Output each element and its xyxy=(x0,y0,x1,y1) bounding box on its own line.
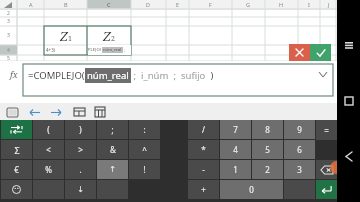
staticText: % xyxy=(45,164,52,175)
button[interactable]: - xyxy=(188,160,219,179)
staticText: núm_real xyxy=(87,69,129,82)
staticText: Z xyxy=(103,27,111,45)
button[interactable]: Name box xyxy=(71,104,87,120)
button[interactable]: =COMPLEJO( xyxy=(23,64,333,96)
staticText: ^ xyxy=(142,144,147,155)
staticText: € xyxy=(14,164,19,175)
staticText: 5 xyxy=(265,144,270,155)
staticText: núm_real xyxy=(103,47,122,53)
button[interactable]: Sheet options xyxy=(92,104,108,120)
button[interactable]: ( xyxy=(33,120,64,139)
button[interactable]: & xyxy=(97,140,128,159)
button[interactable]: : xyxy=(129,120,160,139)
staticText: . xyxy=(79,164,82,175)
button[interactable]: 1 xyxy=(220,160,251,179)
staticText: 4 xyxy=(233,144,238,155)
button[interactable]: ; xyxy=(97,120,128,139)
staticText: 0 xyxy=(249,184,254,195)
staticText: 3 xyxy=(297,164,302,175)
staticText: 8 xyxy=(265,124,270,135)
staticText: =COMPLEJO( xyxy=(28,69,85,82)
staticText: 2 xyxy=(265,164,270,175)
staticText: H xyxy=(279,1,284,8)
button[interactable]: ↓ xyxy=(65,180,96,199)
staticText: ( xyxy=(47,124,50,135)
button[interactable]: Emoji xyxy=(1,180,32,199)
button[interactable]: Σ xyxy=(1,140,32,159)
button[interactable]: Confirm xyxy=(310,44,331,61)
button[interactable]: 2 xyxy=(252,160,283,179)
staticText: I xyxy=(308,1,310,8)
button[interactable]: 4 xyxy=(220,140,251,159)
staticText: + xyxy=(201,184,206,195)
button[interactable]: 3 xyxy=(284,160,315,179)
staticText: F xyxy=(209,1,212,8)
staticText: > xyxy=(78,144,83,155)
staticText: 2 xyxy=(111,34,115,44)
button[interactable]: ↑ xyxy=(97,160,128,179)
button[interactable]: Cancel xyxy=(289,44,310,61)
staticText: Z xyxy=(60,27,68,45)
staticText: 7 xyxy=(233,124,238,135)
button[interactable]: % xyxy=(33,160,64,179)
button[interactable]: Hide keyboard xyxy=(4,104,20,120)
button[interactable]: * xyxy=(188,140,219,159)
button[interactable]: . xyxy=(65,160,96,179)
staticText: ; xyxy=(111,124,114,135)
staticText: 4 xyxy=(7,47,10,54)
button[interactable]: / xyxy=(188,120,219,139)
staticText: = xyxy=(324,125,329,136)
button[interactable]: Insert function xyxy=(5,67,23,81)
button[interactable]: = xyxy=(316,120,337,140)
staticText: Σ xyxy=(14,144,20,156)
button[interactable]: Enter xyxy=(316,180,337,199)
button[interactable]: > xyxy=(65,140,96,159)
button[interactable]: + xyxy=(188,180,219,199)
staticText: 6 xyxy=(297,144,302,155)
button[interactable]: Backspace xyxy=(316,160,337,179)
staticText: ; xyxy=(171,69,179,82)
button[interactable]: 7 xyxy=(220,120,251,139)
staticText: & xyxy=(110,144,116,155)
button[interactable]: Next xyxy=(48,104,64,120)
button[interactable]: 8 xyxy=(252,120,283,139)
staticText: C xyxy=(107,1,111,8)
button[interactable]: Previous xyxy=(26,104,42,120)
button[interactable]: Tab xyxy=(1,120,32,139)
staticText: < xyxy=(46,144,51,155)
button[interactable]: 0 xyxy=(220,180,283,199)
staticText: ↓ xyxy=(77,185,84,194)
button[interactable]: 6 xyxy=(284,140,315,159)
staticText: D xyxy=(146,1,151,8)
staticText: - xyxy=(202,164,205,175)
button[interactable]: Home xyxy=(341,93,357,109)
staticText: ; xyxy=(123,47,126,53)
button[interactable]: Expand formula bar xyxy=(317,68,329,80)
button[interactable]: ^ xyxy=(129,140,160,159)
staticText: sufijo xyxy=(181,69,206,82)
button[interactable]: < xyxy=(33,140,64,159)
staticText: ↑ xyxy=(109,165,116,174)
staticText: PLEJO( xyxy=(88,47,101,53)
staticText: 2 xyxy=(7,10,10,17)
staticText: fx xyxy=(10,68,18,80)
staticText: B xyxy=(64,1,68,8)
staticText: ; xyxy=(131,69,139,82)
button[interactable]: € xyxy=(1,160,32,179)
staticText: 3 xyxy=(7,18,10,25)
button[interactable]: ! xyxy=(129,160,160,179)
staticText: 1 xyxy=(68,34,72,44)
staticText: A xyxy=(29,1,33,8)
staticText: * xyxy=(201,144,206,155)
button[interactable]: Recent apps xyxy=(341,37,357,53)
button[interactable]: 9 xyxy=(284,120,315,139)
button[interactable]: ) xyxy=(65,120,96,139)
button[interactable]: Back xyxy=(341,148,357,164)
staticText: 4+3i xyxy=(46,47,55,53)
staticText: 5 xyxy=(7,55,10,61)
staticText: : xyxy=(143,124,146,135)
button[interactable]: 5 xyxy=(252,140,283,159)
